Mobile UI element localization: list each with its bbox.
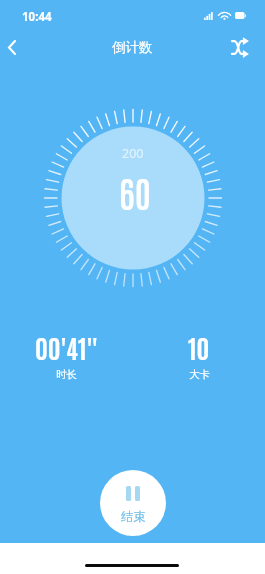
staticText: 00'41'' <box>35 330 98 364</box>
button[interactable]: 结束 <box>100 470 166 536</box>
staticText: 10:44 <box>22 9 52 25</box>
button[interactable]: Back <box>0 30 29 64</box>
staticText: 大卡 <box>189 368 210 381</box>
staticText: 60 <box>119 168 151 215</box>
staticText: 200 <box>122 145 144 162</box>
staticText: 时长 <box>56 368 77 381</box>
staticText: 结束 <box>121 509 146 523</box>
staticText: 倒计数 <box>112 39 153 56</box>
button[interactable]: Shuffle <box>223 30 257 64</box>
staticText: 10 <box>188 330 210 364</box>
